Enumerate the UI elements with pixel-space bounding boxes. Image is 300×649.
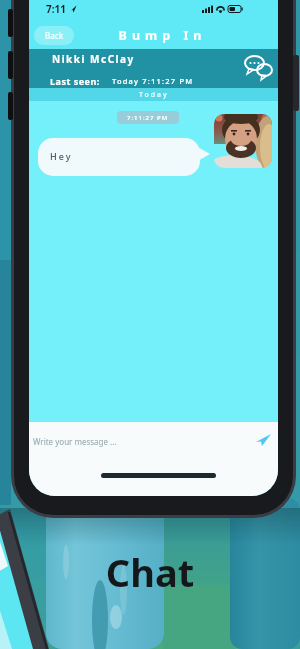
staticText: Bump In [38, 27, 278, 44]
button[interactable]: Write your message ... [29, 426, 278, 456]
button[interactable] [245, 56, 273, 82]
staticText: Last seen: [50, 75, 100, 87]
button[interactable]: Back [34, 26, 74, 45]
button[interactable] [256, 433, 272, 449]
staticText: Hey [50, 150, 73, 162]
staticText: Nikki McClay [52, 52, 135, 66]
staticText: Today 7:11:27 PM [112, 76, 194, 86]
staticText: Today [139, 90, 169, 100]
staticText: 7:11 [46, 2, 66, 16]
staticText: Write your message ... [33, 436, 117, 447]
staticText: Chat [0, 546, 300, 598]
staticText: 7:11:27 PM [127, 114, 169, 122]
staticText: Back [45, 30, 64, 41]
